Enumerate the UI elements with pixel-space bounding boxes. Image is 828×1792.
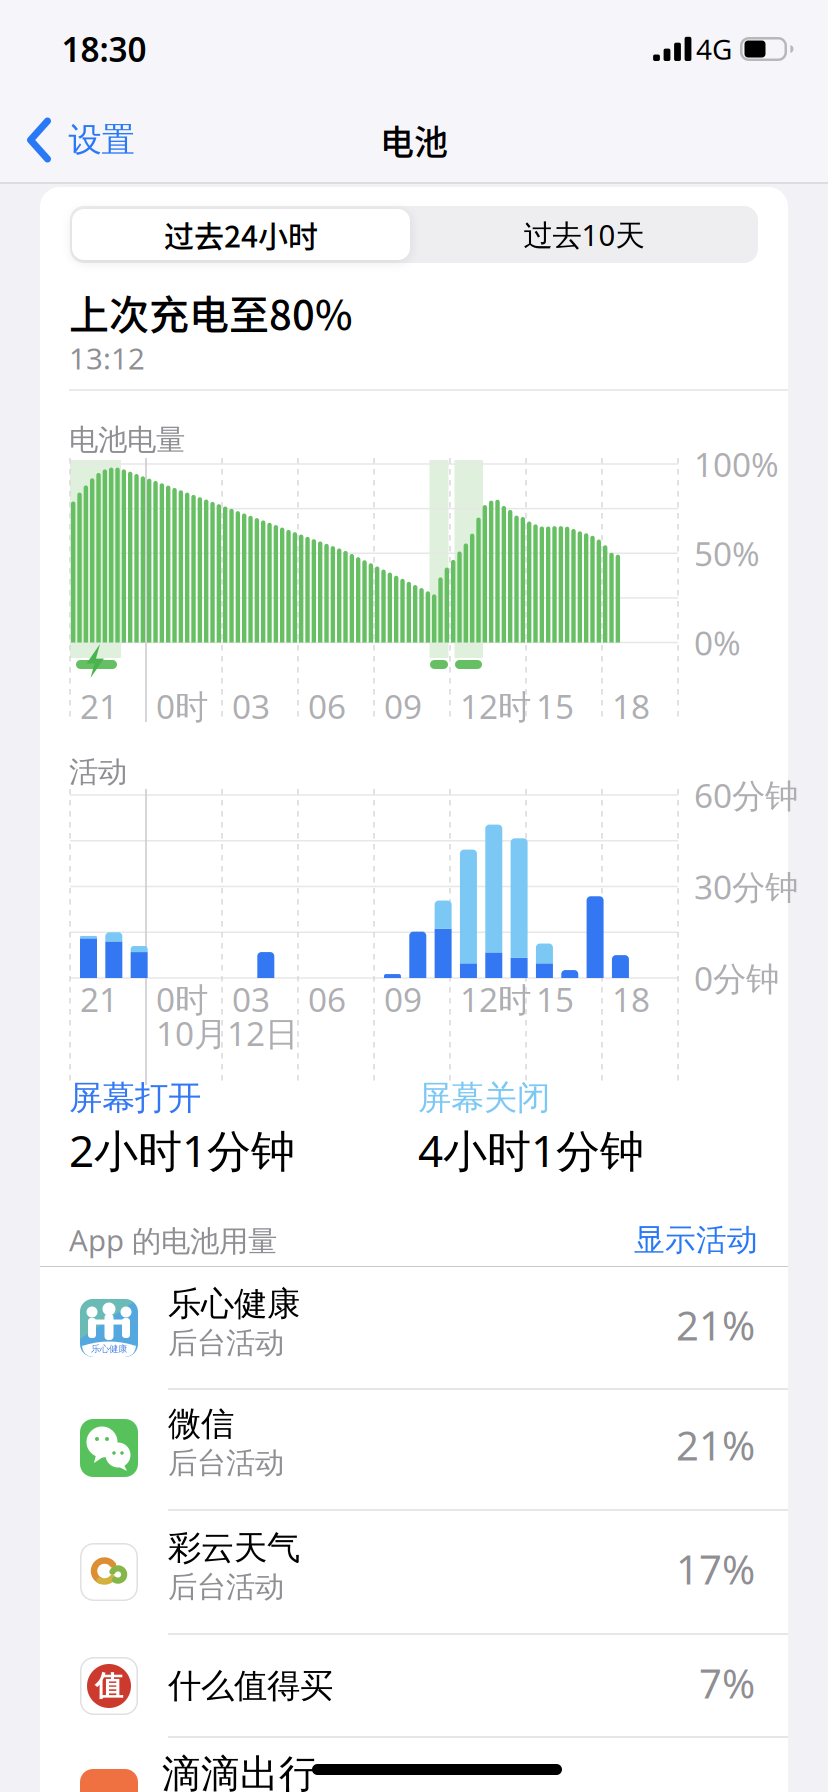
staticText: App 的电池用量 [69, 1220, 277, 1259]
staticText: 50% [694, 531, 760, 575]
staticText: 17% [676, 1542, 755, 1595]
button[interactable]: 设置 [27, 119, 134, 161]
staticText: 7% [699, 1656, 755, 1709]
button[interactable]: 过去24小时 [91, 213, 391, 256]
staticText: 值 [95, 1669, 123, 1703]
staticText: 18 [612, 684, 650, 728]
staticText: 09 [384, 977, 422, 1021]
staticText: 显示活动 [634, 1221, 758, 1259]
staticText: 设置 [68, 119, 134, 160]
staticText: 21% [676, 1298, 755, 1351]
staticText: 15 [536, 977, 574, 1021]
staticText: 09 [384, 684, 422, 728]
staticText: 屏幕关闭 [418, 1077, 550, 1118]
staticText: 06 [308, 684, 346, 728]
staticText: 21 [80, 684, 118, 728]
button[interactable]: 彩云天气 [40, 1513, 788, 1631]
staticText: 活动 [69, 754, 127, 790]
staticText: 03 [232, 684, 270, 728]
staticText: 电池 [380, 115, 448, 165]
staticText: 06 [308, 977, 346, 1021]
staticText: 乐心健康 [91, 1343, 127, 1355]
staticText: 13:12 [69, 338, 145, 377]
staticText: 什么值得买 [168, 1665, 333, 1706]
staticText: 12时 [460, 684, 531, 728]
staticText: 100% [694, 442, 779, 486]
staticText: 4小时1分钟 [418, 1121, 644, 1179]
button[interactable]: 微信 [40, 1389, 788, 1507]
staticText: 18 [612, 977, 650, 1021]
staticText: 18:30 [61, 27, 146, 71]
staticText: 0分钟 [694, 956, 779, 1000]
button[interactable]: 乐心健康 [40, 1269, 788, 1387]
staticText: 电池电量 [69, 422, 185, 458]
staticText: 0时 [156, 684, 208, 728]
staticText: 0% [694, 620, 741, 665]
staticText: 过去10天 [523, 215, 644, 254]
staticText: 4G [696, 30, 732, 68]
staticText: 上次充电至80% [69, 283, 353, 341]
button[interactable]: 显示活动 [558, 1221, 758, 1259]
staticText: 10月12日 [156, 1011, 298, 1055]
staticText: 2小时1分钟 [69, 1121, 295, 1179]
staticText: 30分钟 [694, 864, 798, 909]
staticText: 乐心健康 [168, 1283, 300, 1324]
staticText: 0时 [156, 977, 208, 1021]
staticText: 12时 [460, 977, 531, 1021]
staticText: 15 [536, 684, 574, 728]
button[interactable]: 值 [40, 1627, 788, 1745]
staticText: 滴滴出行 [162, 1750, 318, 1792]
button[interactable]: 过去10天 [434, 215, 734, 254]
button[interactable]: 滴滴出行 [40, 1739, 788, 1792]
staticText: 21% [676, 1418, 755, 1471]
staticText: 21 [80, 977, 118, 1021]
staticText: 03 [232, 977, 270, 1021]
staticText: 过去24小时 [164, 213, 318, 256]
button[interactable] [72, 209, 410, 260]
staticText: 屏幕打开 [69, 1077, 201, 1118]
staticText: 后台活动 [168, 1445, 284, 1481]
staticText: 微信 [168, 1403, 234, 1444]
staticText: 后台活动 [168, 1325, 284, 1361]
staticText: 60分钟 [694, 773, 798, 817]
staticText: 后台活动 [168, 1569, 284, 1605]
staticText: 彩云天气 [168, 1527, 300, 1568]
